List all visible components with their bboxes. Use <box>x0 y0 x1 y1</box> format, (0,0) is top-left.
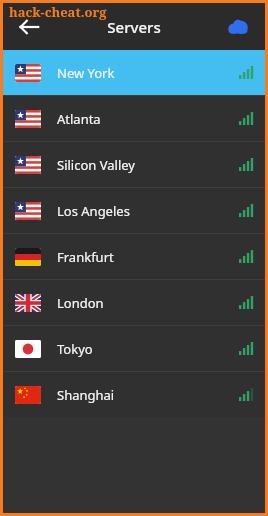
button[interactable]: Back <box>11 9 47 45</box>
button[interactable]: Tokyo <box>3 326 265 371</box>
staticText: Shanghai <box>57 386 239 404</box>
staticText: London <box>57 294 239 312</box>
button[interactable]: London <box>3 280 265 325</box>
staticText: New York <box>57 64 239 82</box>
button[interactable]: Frankfurt <box>3 234 265 279</box>
staticText: Atlanta <box>57 110 239 128</box>
button[interactable]: Atlanta <box>3 96 265 141</box>
button[interactable]: New York <box>3 50 265 95</box>
staticText: Silicon Valley <box>57 156 239 174</box>
staticText: Los Angeles <box>57 202 239 220</box>
staticText: hack-cheat.org <box>9 3 107 21</box>
staticText: Frankfurt <box>57 248 239 266</box>
button[interactable]: Silicon Valley <box>3 142 265 187</box>
button[interactable]: Cloud <box>221 10 255 44</box>
button[interactable]: Shanghai <box>3 372 265 417</box>
button[interactable]: Los Angeles <box>3 188 265 233</box>
staticText: Tokyo <box>57 340 239 358</box>
staticText: Servers <box>107 17 161 37</box>
